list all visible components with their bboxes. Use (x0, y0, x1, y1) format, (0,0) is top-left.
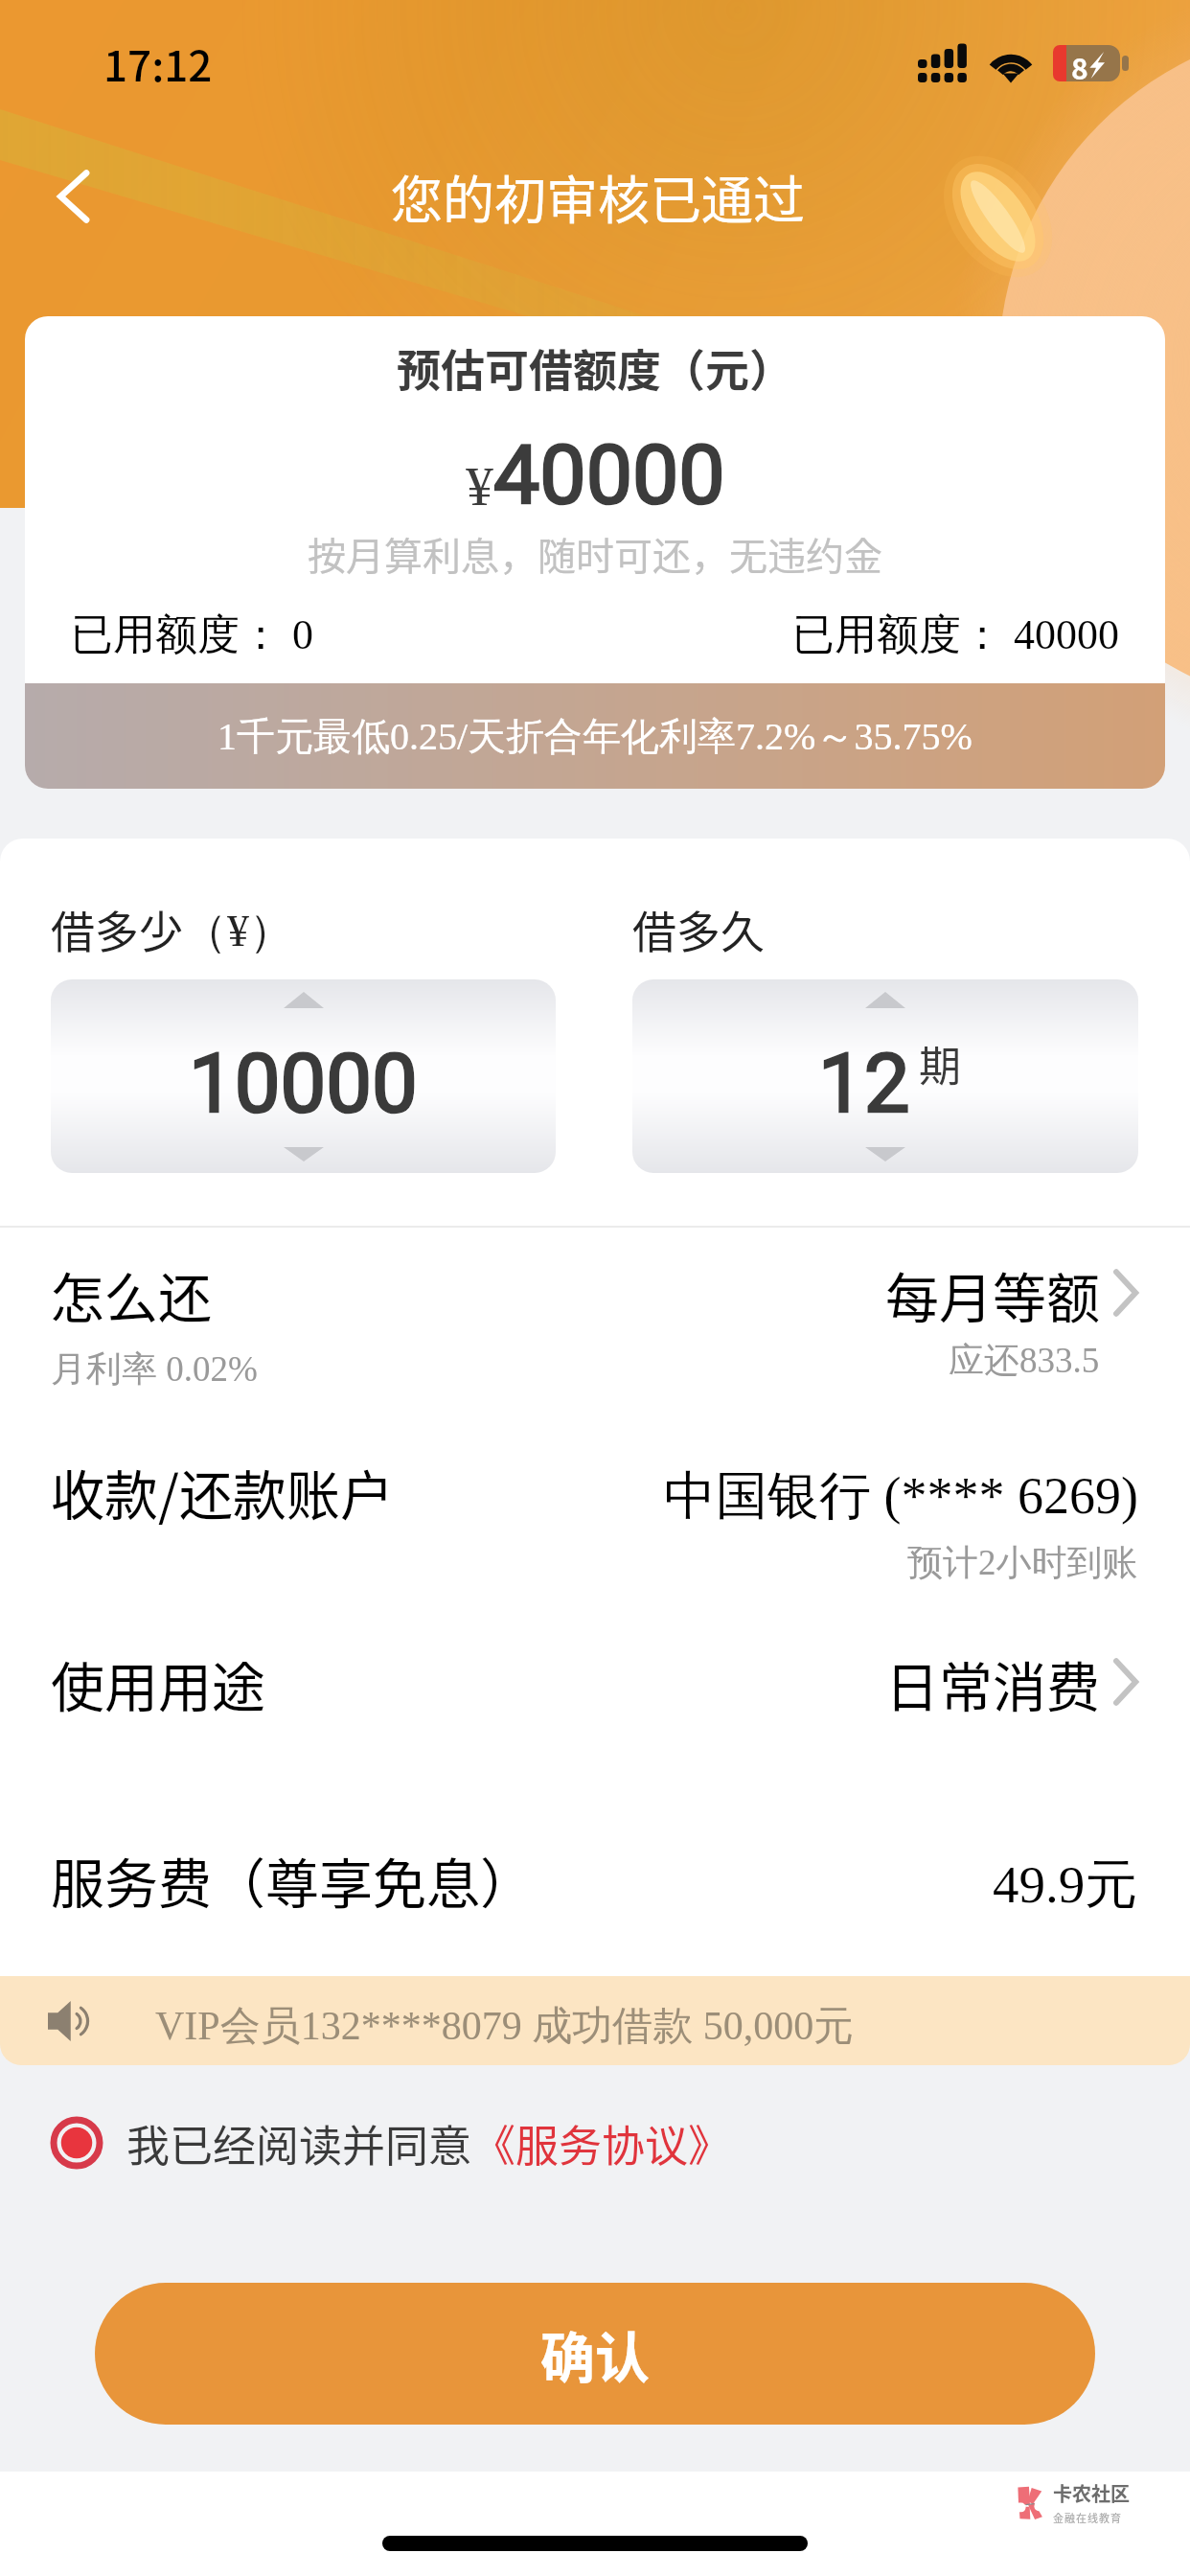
staticText: 《服务协议》 (472, 2112, 732, 2174)
staticText: （¥） (183, 904, 293, 959)
staticText: 17:12 (103, 33, 213, 94)
staticText: 1千元最低0.25/天折合年化利率7.2%～35.75% (217, 712, 973, 760)
staticText: 40000 (493, 426, 725, 523)
staticText: 49.9元 (993, 1851, 1138, 1918)
staticText: 金融在线教育 (1053, 2510, 1122, 2525)
staticText: 10000 (189, 1036, 418, 1132)
staticText: 怎么还 (51, 1255, 212, 1333)
button[interactable]: 服务费（尊享免息） (0, 1789, 1190, 1976)
staticText: 期 (919, 1033, 961, 1094)
staticText: 按月算利息，随时可还，无违约金 (25, 526, 1165, 582)
staticText: 借多久 (632, 897, 765, 961)
button[interactable]: 收款/还款账户 (0, 1400, 1190, 1598)
button[interactable]: 10000 (51, 979, 556, 1173)
staticText: 我已经阅读并同意 (126, 2112, 472, 2174)
button[interactable]: VIP会员132****8079 成功借款 50,000元 (0, 1976, 1190, 2065)
staticText: 应还833.5 (949, 1338, 1100, 1383)
staticText: 每月等额 (885, 1255, 1100, 1333)
staticText: 已用额度： 0 (71, 609, 313, 661)
staticText: 中国银行 (**** 6269) (664, 1463, 1138, 1529)
staticText: 收款/还款账户 (51, 1453, 394, 1530)
staticText: 您的初审核已通过 (391, 159, 805, 234)
staticText: 已用额度： 40000 (792, 609, 1119, 661)
staticText: ¥ (466, 455, 493, 517)
button[interactable]: 12 (632, 979, 1138, 1173)
staticText: 确认 (540, 2314, 650, 2394)
staticText: 服务费（尊享免息） (51, 1841, 534, 1919)
button[interactable]: 我已经阅读并同意 (0, 2093, 1190, 2193)
staticText: 预估可借额度（元） (25, 335, 1165, 400)
staticText: 月利率 0.02% (51, 1346, 258, 1391)
button[interactable]: 使用用途 (0, 1598, 1190, 1789)
staticText: 8 (1071, 46, 1088, 82)
staticText: 12 (818, 1036, 910, 1132)
staticText: 预计2小时到账 (907, 1540, 1138, 1585)
button[interactable]: 怎么还 (0, 1228, 1190, 1400)
staticText: 日常消费 (885, 1644, 1100, 1722)
staticText: 借多少 (51, 897, 183, 961)
staticText: 使用用途 (51, 1644, 265, 1722)
staticText: 卡农社区 (1053, 2479, 1130, 2507)
button[interactable]: Back (33, 150, 125, 242)
staticText: VIP会员132****8079 成功借款 50,000元 (155, 2001, 855, 2052)
button[interactable]: 确认 (95, 2283, 1095, 2425)
